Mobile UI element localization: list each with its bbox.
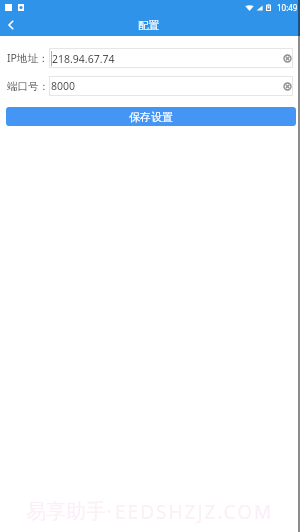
staticText: 10:49	[277, 2, 298, 13]
button[interactable]: Back	[0, 14, 22, 36]
staticText: 易享助手	[26, 499, 106, 524]
button[interactable]: Clear	[281, 80, 293, 92]
button[interactable]: 8000	[49, 76, 293, 96]
button[interactable]: 保存设置	[6, 107, 296, 126]
staticText: 配置	[138, 19, 159, 32]
button[interactable]: Clear	[281, 52, 293, 64]
staticText: 端口号：	[7, 80, 49, 93]
button[interactable]: 218.94.67.74	[49, 48, 293, 68]
staticText: 218.94.67.74	[52, 52, 115, 66]
staticText: EEDSHZJZ.COM	[115, 499, 274, 525]
staticText: 8000	[51, 79, 76, 93]
staticText: IP地址：	[7, 51, 49, 65]
staticText: 保存设置	[129, 110, 173, 124]
